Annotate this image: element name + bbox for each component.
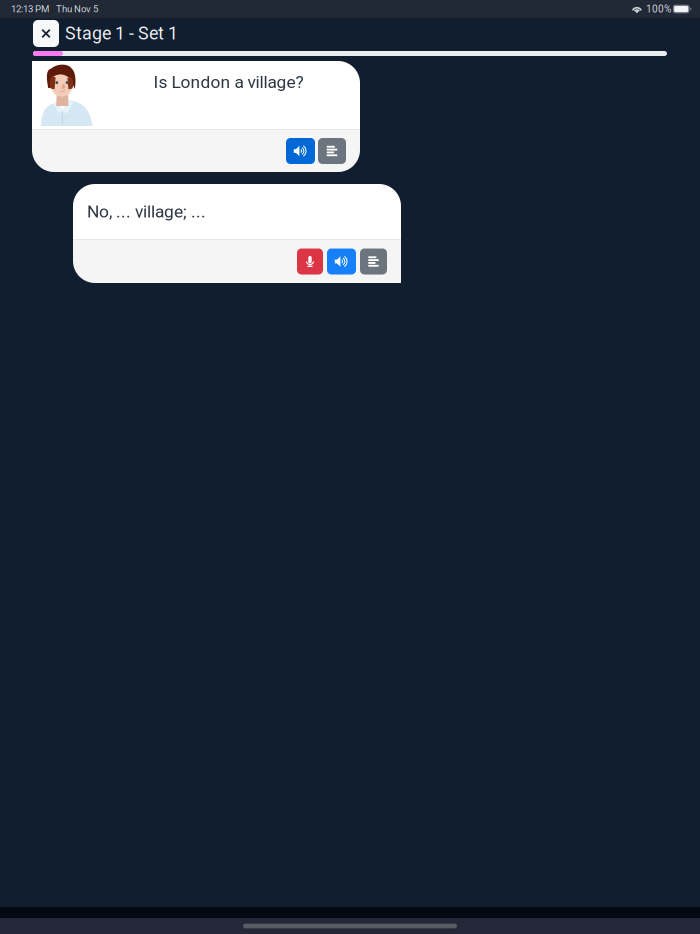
staticText: 12:13 PM [11, 3, 49, 15]
button[interactable]: Play audio [286, 138, 315, 164]
button[interactable]: Show text [360, 248, 387, 274]
staticText: Stage 1 - Set 1 [65, 23, 178, 44]
staticText: 100% [646, 3, 671, 15]
staticText: Thu Nov 5 [56, 3, 98, 15]
staticText: No, ... village; ... [87, 201, 206, 222]
button[interactable]: Close [33, 20, 59, 47]
button[interactable]: Record [297, 248, 323, 274]
staticText: Is London a village? [153, 72, 303, 92]
button[interactable]: Play audio [327, 248, 356, 274]
button[interactable]: Show text [318, 138, 346, 164]
